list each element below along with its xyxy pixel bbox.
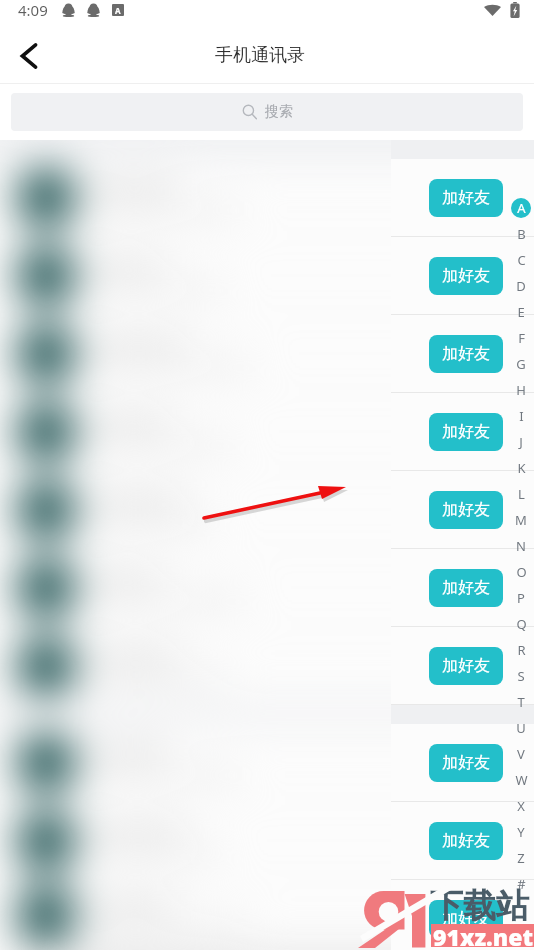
button[interactable]: X [508, 793, 534, 819]
staticText: # [517, 875, 526, 893]
staticText: 加好友 [442, 753, 490, 773]
staticText: F [518, 329, 525, 347]
button[interactable] [0, 159, 391, 237]
button[interactable] [0, 393, 391, 471]
button[interactable]: O [508, 559, 534, 585]
button[interactable]: Q [508, 611, 534, 637]
staticText: Q [516, 615, 527, 633]
button[interactable]: P [508, 585, 534, 611]
staticText: N [516, 537, 526, 555]
staticText: S [517, 667, 525, 685]
button[interactable]: V [508, 741, 534, 767]
button[interactable]: K [508, 455, 534, 481]
button[interactable]: Back [7, 34, 51, 78]
staticText: 加好友 [442, 266, 490, 286]
button[interactable]: J [508, 429, 534, 455]
button[interactable]: 加好友 [391, 237, 534, 315]
staticText: B [517, 225, 526, 243]
button[interactable]: 加好友 [429, 822, 503, 860]
button[interactable] [0, 880, 391, 950]
staticText: Y [517, 823, 525, 841]
button[interactable]: G [508, 351, 534, 377]
staticText: 下载站 [430, 885, 529, 927]
button[interactable] [0, 237, 391, 315]
button[interactable]: C [508, 247, 534, 273]
staticText: 加好友 [442, 188, 490, 208]
staticText: 4:09 [18, 0, 48, 20]
staticText: A [517, 199, 526, 217]
staticText: O [516, 563, 527, 581]
button[interactable] [0, 627, 391, 705]
button[interactable]: 加好友 [429, 257, 503, 295]
staticText: L [518, 485, 525, 503]
staticText: H [516, 381, 526, 399]
button[interactable]: B [508, 221, 534, 247]
button[interactable]: F [508, 325, 534, 351]
staticText: G [516, 355, 526, 373]
button[interactable] [0, 549, 391, 627]
staticText: W [515, 771, 528, 789]
staticText: Z [517, 849, 525, 867]
button[interactable]: 加好友 [429, 744, 503, 782]
button[interactable] [0, 802, 391, 880]
button[interactable]: H [508, 377, 534, 403]
staticText: E [517, 303, 525, 321]
staticText: P [517, 589, 525, 607]
button[interactable]: 加好友 [429, 569, 503, 607]
button[interactable]: W [508, 767, 534, 793]
button[interactable]: 加好友 [391, 627, 534, 705]
button[interactable]: 加好友 [429, 335, 503, 373]
staticText: A [115, 5, 121, 16]
button[interactable]: 加好友 [429, 647, 503, 685]
staticText: D [516, 277, 526, 295]
button[interactable]: 加好友 [391, 393, 534, 471]
button[interactable]: 加好友 [429, 413, 503, 451]
button[interactable] [0, 724, 391, 802]
staticText: 加好友 [442, 831, 490, 851]
button[interactable]: 搜索 [11, 93, 523, 131]
staticText: 加好友 [442, 909, 490, 929]
staticText: C [517, 251, 526, 269]
staticText: U [516, 719, 526, 737]
button[interactable]: 加好友 [391, 880, 534, 950]
staticText: I [519, 407, 524, 425]
button[interactable]: 加好友 [391, 315, 534, 393]
staticText: T [517, 693, 525, 711]
button[interactable]: N [508, 533, 534, 559]
staticText: 搜索 [265, 103, 293, 121]
button[interactable]: E [508, 299, 534, 325]
button[interactable]: M [508, 507, 534, 533]
staticText: X [517, 797, 525, 815]
button[interactable]: 加好友 [429, 900, 503, 938]
staticText: 加好友 [442, 656, 490, 676]
button[interactable]: D [508, 273, 534, 299]
button[interactable]: 加好友 [429, 491, 503, 529]
button[interactable]: 加好友 [391, 549, 534, 627]
button[interactable]: 加好友 [391, 471, 534, 549]
button[interactable]: A [508, 195, 534, 221]
staticText: 加好友 [442, 500, 490, 520]
staticText: J [519, 433, 523, 451]
staticText: K [517, 459, 526, 477]
button[interactable]: 加好友 [429, 179, 503, 217]
button[interactable] [0, 471, 391, 549]
button[interactable]: S [508, 663, 534, 689]
staticText: 手机通讯录 [215, 44, 305, 67]
staticText: 加好友 [442, 422, 490, 442]
button[interactable]: 加好友 [391, 159, 534, 237]
button[interactable]: L [508, 481, 534, 507]
button[interactable]: U [508, 715, 534, 741]
button[interactable]: Z [508, 845, 534, 871]
button[interactable]: 加好友 [391, 802, 534, 880]
button[interactable] [0, 315, 391, 393]
staticText: 加好友 [442, 344, 490, 364]
staticText: R [517, 641, 526, 659]
button[interactable]: 加好友 [391, 724, 534, 802]
staticText: 加好友 [442, 578, 490, 598]
button[interactable]: Y [508, 819, 534, 845]
staticText: V [517, 745, 525, 763]
button[interactable]: # [508, 871, 534, 897]
button[interactable]: R [508, 637, 534, 663]
button[interactable]: I [508, 403, 534, 429]
button[interactable]: T [508, 689, 534, 715]
